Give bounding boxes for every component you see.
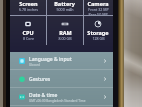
button[interactable]: Battery <box>46 0 83 15</box>
button[interactable]: RAM <box>46 16 83 45</box>
other: Open <box>102 94 108 100</box>
staticText: 128 GB <box>92 36 105 41</box>
staticText: Language & input <box>29 56 72 63</box>
staticText: RAM <box>59 29 72 36</box>
staticText: Gestures <box>29 76 51 83</box>
button[interactable]: Screen <box>10 0 46 15</box>
staticText: Front 32 MP <box>88 7 109 12</box>
staticText: Date & time <box>29 92 58 99</box>
staticText: Gboard <box>29 63 40 67</box>
other: Open <box>102 76 108 82</box>
staticText: Camera <box>87 0 109 7</box>
staticText: Battery <box>54 0 75 7</box>
button[interactable]: CPU <box>10 16 46 45</box>
staticText: GMT+06:00 Bangladesh Standard Time <box>29 99 86 103</box>
staticText: Rear 50 MP <box>88 12 108 15</box>
staticText: 6.78 inches <box>19 7 38 12</box>
staticText: 5000 mAh <box>56 7 74 12</box>
staticText: Storage <box>87 29 109 36</box>
staticText: 8.00 GB <box>58 36 72 41</box>
staticText: Screen <box>19 0 38 7</box>
other: Open <box>102 58 108 64</box>
button[interactable]: Camera <box>83 0 113 15</box>
button[interactable]: Date & time <box>10 88 113 106</box>
staticText: 8 Core <box>23 36 34 41</box>
button[interactable]: Storage <box>83 16 113 45</box>
staticText: CPU <box>22 29 34 36</box>
button[interactable]: Gestures <box>10 70 113 88</box>
button[interactable]: Language & input <box>10 52 113 70</box>
